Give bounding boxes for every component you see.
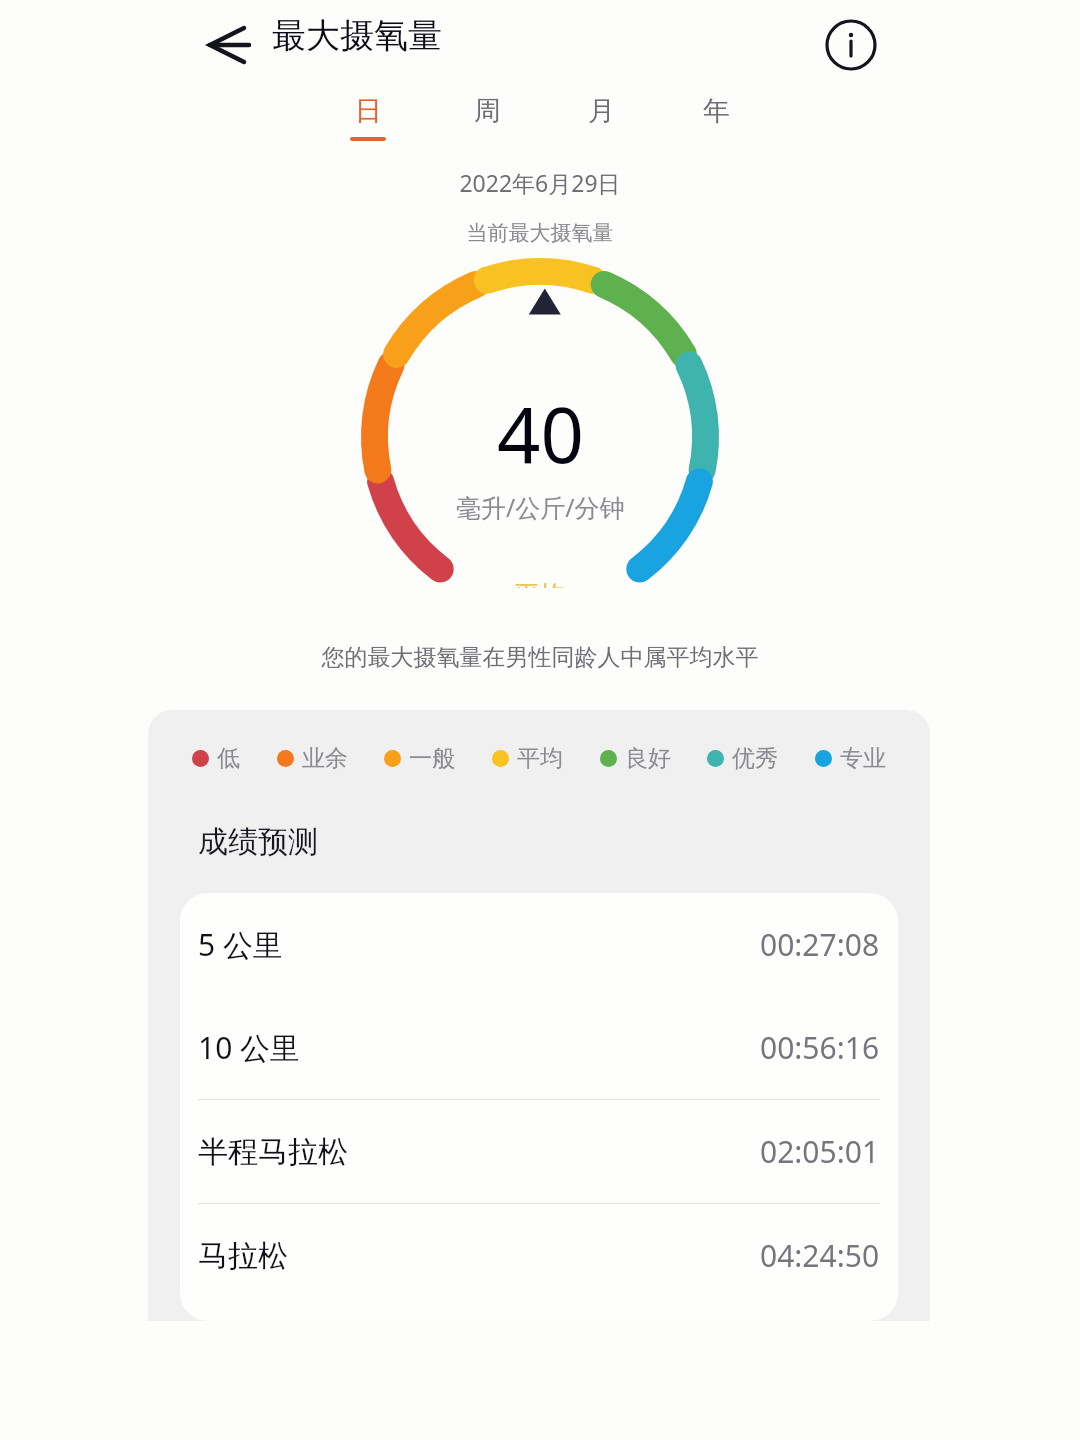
button[interactable]: 半程马拉松 — [180, 1099, 898, 1203]
staticText: 良好 — [625, 744, 671, 773]
button[interactable]: 月 — [578, 90, 625, 145]
staticText: 专业 — [840, 744, 886, 773]
staticText: 月 — [588, 94, 615, 128]
staticText: 10 公里 — [198, 1027, 301, 1068]
staticText: 业余 — [302, 744, 348, 773]
staticText: 最大摄氧量 — [272, 14, 442, 57]
staticText: 平均 — [517, 744, 563, 773]
button[interactable]: 周 — [464, 90, 511, 145]
button[interactable]: 日 — [340, 90, 396, 145]
staticText: 半程马拉松 — [198, 1133, 348, 1171]
staticText: 04:24:50 — [760, 1235, 880, 1276]
staticText: 40 — [497, 382, 584, 486]
staticText: 5 公里 — [198, 924, 283, 965]
staticText: 一般 — [409, 744, 455, 773]
staticText: 2022年6月29日 — [0, 167, 1080, 198]
button[interactable]: 年 — [693, 90, 740, 145]
staticText: 马拉松 — [198, 1237, 288, 1275]
staticText: 当前最大摄氧量 — [0, 220, 1080, 246]
staticText: 00:27:08 — [760, 924, 880, 965]
staticText: 日 — [355, 94, 382, 128]
staticText: 周 — [474, 94, 501, 128]
staticText: 成绩预测 — [198, 823, 318, 861]
staticText: 毫升/公斤/分钟 — [456, 490, 625, 524]
staticText: 低 — [217, 744, 240, 773]
staticText: 年 — [703, 94, 730, 128]
button[interactable]: 马拉松 — [180, 1203, 898, 1307]
staticText: 优秀 — [732, 744, 778, 773]
staticText: 平均 — [514, 579, 566, 588]
button[interactable]: 5 公里 — [180, 893, 898, 996]
staticText: 02:05:01 — [760, 1131, 880, 1172]
staticText: 您的最大摄氧量在男性同龄人中属平均水平 — [0, 643, 1080, 672]
staticText: 00:56:16 — [760, 1027, 880, 1068]
button[interactable]: 信息 — [818, 12, 884, 78]
button[interactable]: 10 公里 — [180, 996, 898, 1099]
button[interactable]: 返回 — [196, 14, 258, 76]
